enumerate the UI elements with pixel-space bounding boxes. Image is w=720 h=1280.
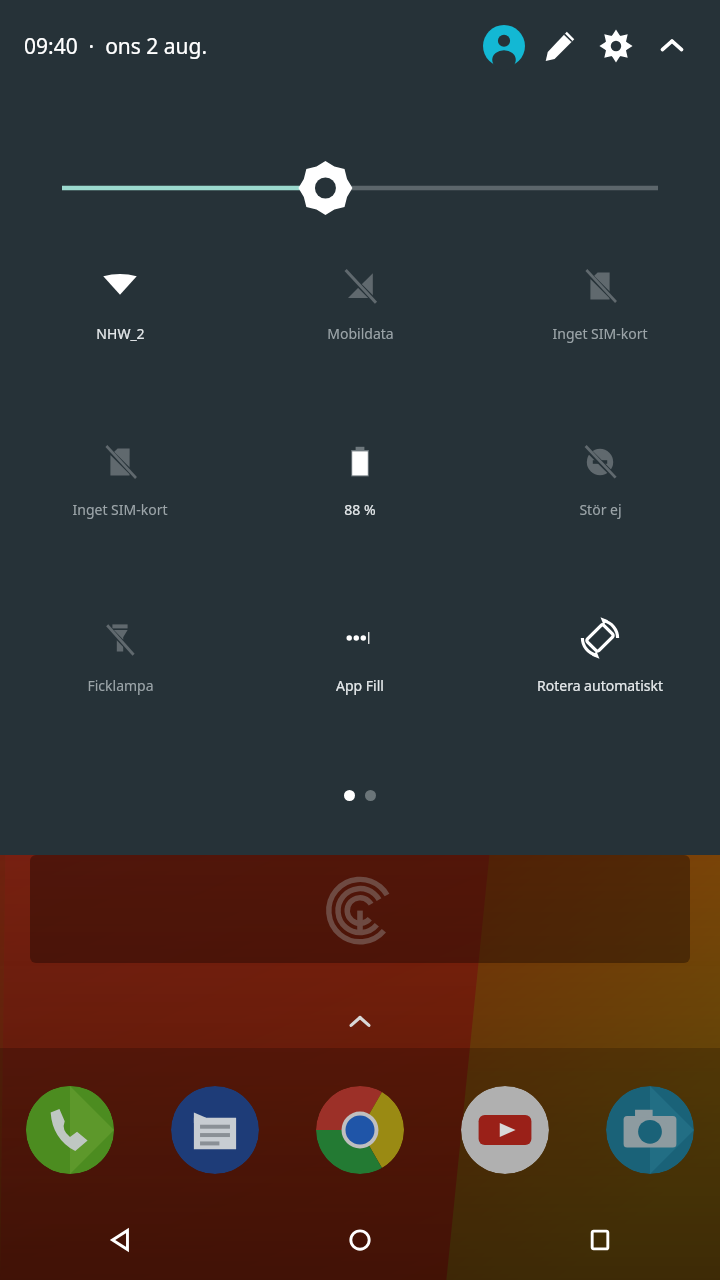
staticText: App Fill (336, 676, 384, 695)
button[interactable]: Ficklampa (0, 614, 240, 695)
button[interactable]: Collapse (644, 18, 700, 74)
button[interactable]: YouTube (461, 1086, 549, 1174)
button[interactable]: Home (240, 1200, 480, 1280)
staticText: Rotera automatiskt (537, 676, 663, 695)
staticText: 09:40 · ons 2 aug. (24, 32, 208, 61)
staticText: Stör ej (579, 500, 622, 519)
button[interactable]: Brightness (0, 160, 720, 216)
staticText: NHW_2 (96, 324, 145, 343)
staticText: 88 % (344, 500, 376, 519)
button[interactable]: Camera (606, 1086, 694, 1174)
button[interactable]: Chrome (316, 1086, 404, 1174)
staticText: Inget SIM-kort (72, 500, 168, 519)
button[interactable]: Messages (171, 1086, 259, 1174)
staticText: Inget SIM-kort (552, 324, 648, 343)
button[interactable]: NHW_2 (0, 262, 240, 343)
staticText: Mobildata (327, 324, 394, 343)
button[interactable]: Back (0, 1200, 240, 1280)
button[interactable]: App Fill (240, 614, 480, 695)
button[interactable]: Rotera automatiskt (480, 614, 720, 695)
button[interactable]: Open app drawer (340, 1002, 380, 1042)
button[interactable]: Phone (26, 1086, 114, 1174)
staticText: Ficklampa (87, 676, 154, 695)
button[interactable]: Inget SIM-kort (480, 262, 720, 343)
button[interactable]: Settings (588, 18, 644, 74)
button[interactable]: 88 % (240, 438, 480, 519)
button[interactable]: Inget SIM-kort (0, 438, 240, 519)
button[interactable]: User profile (476, 18, 532, 74)
button[interactable]: Stör ej (480, 438, 720, 519)
button[interactable]: Pocket Casts widget (30, 855, 690, 963)
button[interactable]: Recent apps (480, 1200, 720, 1280)
button[interactable]: Edit tiles (532, 18, 588, 74)
button[interactable]: Mobildata (240, 262, 480, 343)
